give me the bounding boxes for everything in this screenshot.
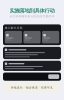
staticText: 从目标拆解到执行跟踪的完整闭环 (9, 15, 54, 18)
button[interactable]: 操作 (48, 74, 59, 79)
button[interactable]: 功能 (5, 31, 22, 43)
staticText: 实施落地到具体行动 (9, 7, 54, 14)
button[interactable]: 功能 (42, 31, 59, 43)
button[interactable]: 功能 (23, 31, 41, 43)
staticText: 持续迭代 · 稳步推进 · 结果可见 (11, 86, 53, 89)
staticText: 核心能力总览 (5, 26, 23, 29)
